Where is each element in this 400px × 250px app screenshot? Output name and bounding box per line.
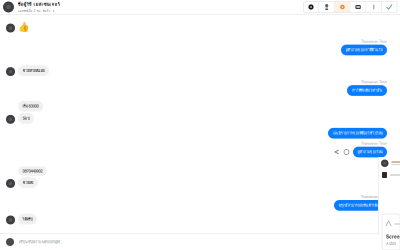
button[interactable]: Extension <box>303 1 318 12</box>
button[interactable]: เริ่ม 63000 <box>18 101 43 112</box>
button[interactable]: Reply <box>333 148 340 155</box>
staticText: และมีรายการของที่ต้องใช้ไปใหม <box>332 130 382 136</box>
staticText: เราให้สิ่งเดียวเท่านั้น <box>351 87 382 93</box>
button[interactable]: ชื่อผู้ใช้ เมสเซนเจอร์ <box>0 1 59 13</box>
staticText: แอคทีฟเมื่อ 3 ชม. ที่แล้ว ▾ <box>17 8 54 13</box>
staticText: ดูคำถามของใหม <box>357 149 382 155</box>
staticText: Thanawan Thon <box>361 80 387 84</box>
button[interactable]: 56 บ <box>18 113 34 124</box>
button[interactable]: ช่วยทายหน่อย <box>18 65 49 76</box>
staticText: Thanawan Thon <box>361 39 387 43</box>
button[interactable]: พรุ่งนี้สามารถส่งสินค้าได้แล้ว <box>334 200 387 211</box>
staticText: 0870449902 <box>22 169 42 173</box>
staticText: Scree <box>386 234 400 239</box>
staticText: พรุ่งนี้สามารถส่งสินค้าได้แล้ว <box>338 202 382 208</box>
staticText: 56 บ <box>22 115 29 121</box>
button[interactable]: Screenshot autosaved <box>382 214 400 250</box>
button[interactable]: Mail <box>351 1 366 12</box>
button[interactable]: Verified <box>382 1 397 12</box>
button[interactable]: React <box>343 148 350 155</box>
staticText: เริ่ม 63000 <box>22 103 38 109</box>
button[interactable]: Account <box>378 157 400 169</box>
staticText: Thanawan Thon <box>361 142 387 145</box>
staticText: ดูคำถามของเราที่ด้านใจ <box>345 47 382 53</box>
staticText: ช่วยทายหน่อย <box>22 68 44 74</box>
staticText: เขียนข้อความ Messenger… <box>19 239 63 245</box>
button[interactable]: ช่วยส่ง <box>18 177 38 188</box>
button[interactable]: เขียนข้อความ Messenger… <box>0 234 400 250</box>
button[interactable]: Passwords <box>319 1 334 12</box>
staticText: ชื่อผู้ใช้ เมสเซนเจอร์ <box>17 1 59 8</box>
button[interactable]: ดูคำถามของใหม <box>353 147 387 157</box>
button[interactable]: Notes <box>335 1 350 12</box>
staticText: 👍 <box>18 22 30 32</box>
button[interactable]: ได้ครับ <box>18 214 37 224</box>
button[interactable]: 0870449902 <box>18 166 47 176</box>
staticText: ช่วยส่ง <box>22 180 33 185</box>
button[interactable]: ดูคำถามของเราที่ด้านใจ <box>341 45 387 55</box>
button[interactable]: เราให้สิ่งเดียวเท่านั้น <box>347 85 387 96</box>
button[interactable]: และมีรายการของที่ต้องใช้ไปใหม <box>328 128 387 138</box>
staticText: Thanawan Thon <box>361 195 387 199</box>
button[interactable]: Saved <box>378 169 400 180</box>
staticText: ได้ครับ <box>22 216 32 222</box>
staticText: Autos <box>386 241 396 246</box>
button[interactable]: More <box>366 1 381 12</box>
